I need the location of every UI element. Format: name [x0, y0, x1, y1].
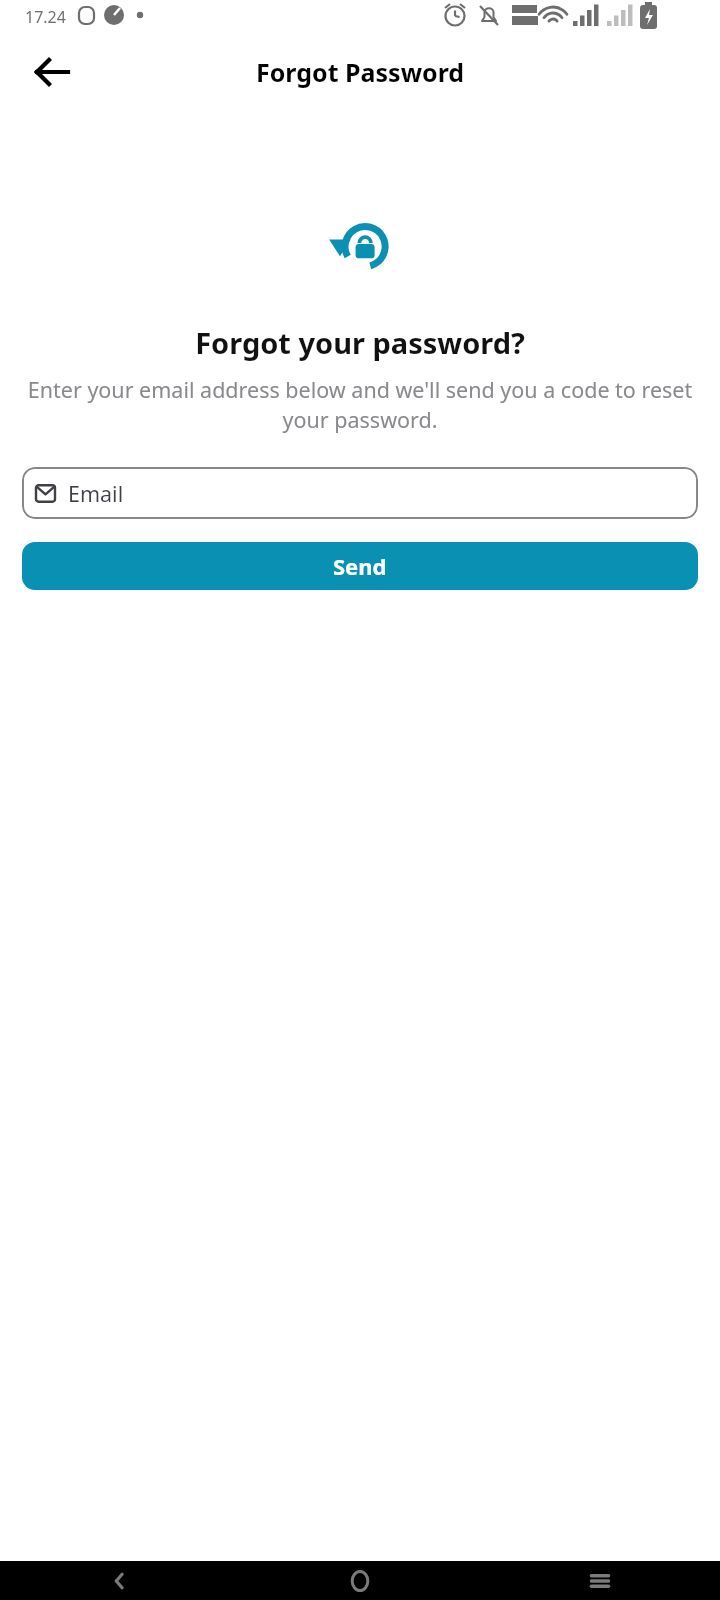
button[interactable]: Email [22, 467, 698, 519]
staticText: Forgot your password? [0, 323, 720, 362]
staticText: Email [68, 479, 124, 508]
button[interactable]: Back [18, 38, 86, 106]
button[interactable]: Send [22, 542, 698, 590]
staticText: Enter your email address below and we'll… [21, 375, 699, 434]
staticText: Forgot Password [256, 55, 465, 89]
button[interactable]: Home [240, 1561, 480, 1600]
staticText: 17.24 [25, 6, 66, 28]
staticText: Send [333, 551, 387, 581]
button[interactable]: Recent apps [480, 1561, 720, 1600]
button[interactable]: Back [0, 1561, 240, 1600]
